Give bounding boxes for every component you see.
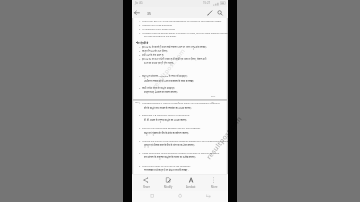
- button[interactable]: Home: [173, 191, 189, 202]
- button[interactable]: Search: [216, 8, 226, 18]
- staticText: स्पष्टीकरण निकाय का दो रूपों में कार्यवि…: [144, 80, 195, 83]
- staticText: More: [211, 185, 218, 189]
- staticText: Analyse the nature of the interface betw…: [142, 140, 229, 143]
- staticText: Share: [143, 185, 150, 189]
- staticText: मूलभूत एवं मौलिक कणों के बीच के अंतर का …: [144, 144, 195, 147]
- staticText: 2.: [139, 24, 141, 27]
- staticText: SET-A: [135, 101, 140, 103]
- staticText: उदाहरण सह क्षेत्रफलों का विवरण कीजिए।: [144, 91, 178, 94]
- button[interactable]: Back: [199, 191, 215, 202]
- staticText: 4.: [139, 32, 141, 35]
- staticText: 2: [178, 101, 180, 103]
- button[interactable]: Modify: [156, 174, 180, 191]
- staticText: 2.: [139, 114, 141, 117]
- staticText: Discuss the relationship between electri…: [142, 127, 201, 130]
- staticText: 1.: [139, 46, 141, 49]
- staticText: Elaborate V-B Marshall's theory of reson…: [142, 114, 190, 117]
- staticText: Write short notes on any two of the foll…: [142, 165, 191, 168]
- staticText: 2.: [139, 50, 141, 53]
- staticText: किसी आवेश वाहक के सिद्धांत समझाइए।: [142, 87, 176, 90]
- staticText: 35: [147, 11, 151, 16]
- staticText: निम्नलिखित में से किन्हीं दो पर संक्षिप्…: [144, 169, 189, 172]
- staticText: Considering Bohr's Theory of quantum the…: [142, 102, 220, 105]
- staticText: All questions carry equal marks: [142, 28, 176, 31]
- staticText: सभी प्रश्नों के अंक समान हैं।: [142, 54, 164, 57]
- staticText: 1.: [139, 102, 141, 105]
- staticText: विद्युत एवं चुंबकीय के बीच के संबंध की व…: [144, 132, 189, 135]
- staticText: 1.: [139, 20, 141, 23]
- staticText: नोट हिन्दी में: [136, 41, 149, 45]
- staticText: उत्तरों का माध्यम एक ही होना चाहिए।: [144, 62, 174, 65]
- staticText: Name prominent characterisation modern p…: [142, 152, 220, 155]
- button[interactable]: Back: [133, 8, 143, 18]
- staticText: ( 2 ): [211, 101, 215, 103]
- button[interactable]: Edit: [205, 8, 215, 18]
- staticText: Answers must be written either in Englis…: [142, 32, 228, 35]
- button[interactable]: Share: [132, 174, 156, 191]
- staticText: Jio 4G: [135, 1, 143, 5]
- staticText: Attempt any three questions: [142, 24, 173, 27]
- staticText: इस प्रश्न-पत्र के मिलते ही ऊपर लिखे निर्…: [142, 46, 207, 49]
- staticText: 4.: [139, 58, 141, 61]
- staticText: 3.: [139, 54, 141, 57]
- staticText: resultpost.com: [204, 114, 245, 162]
- staticText: विद्युत द्वारा संचालित Coulomb के नियम क…: [142, 75, 188, 78]
- staticText: 3.: [139, 127, 141, 130]
- staticText: वी. बी. मार्शल के अनुनाद सिद्धांत की व्य…: [144, 119, 187, 122]
- button[interactable]: More: [204, 174, 228, 191]
- staticText: किन्हीं तीन प्रश्नों के उत्तर दीजिए।: [142, 50, 168, 53]
- staticText: 3.: [139, 28, 141, 31]
- staticText: be used throughout the paper.: [144, 35, 177, 38]
- staticText: Acrobat: [186, 185, 196, 189]
- staticText: कण संरचना के आधुनिक सिद्धांतों के विवरण …: [144, 156, 196, 159]
- staticText: 15:27: [203, 1, 211, 5]
- staticText: 5.: [139, 152, 141, 155]
- staticText: Write your Roll No. at the top immediate…: [142, 20, 222, 23]
- staticText: इस प्रश्न-पत्र का उत्तर अंग्रेजी अथवा हि…: [142, 58, 207, 61]
- staticText: Modify: [164, 185, 173, 189]
- staticText: 4.: [139, 140, 141, 143]
- staticText: बोर के सिद्धांत तथा रिडबर्ग के नियतांक क…: [144, 107, 192, 110]
- staticText: 1.: [139, 75, 141, 78]
- staticText: 2.: [139, 87, 141, 90]
- button[interactable]: Acrobat: [180, 174, 204, 191]
- staticText: P.T.O.: [211, 95, 216, 98]
- staticText: resultpost.com: [150, 46, 187, 91]
- button[interactable]: Recents: [147, 191, 163, 202]
- staticText: 6.: [139, 165, 141, 168]
